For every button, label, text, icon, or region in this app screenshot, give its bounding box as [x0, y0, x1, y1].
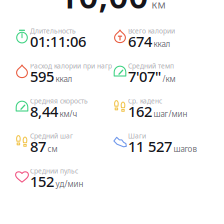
staticText: Средняя скорость	[30, 96, 88, 105]
staticText: км	[151, 0, 165, 11]
staticText: /км	[162, 73, 175, 84]
button[interactable]: Средний темп	[112, 55, 212, 90]
staticText: 595	[30, 66, 54, 86]
staticText: Длительность	[30, 26, 76, 35]
button[interactable]: Шаги	[112, 125, 212, 160]
staticText: шагов	[173, 143, 197, 154]
staticText: Всего калорий	[128, 26, 175, 35]
staticText: Расход калорий при нагрузке	[30, 61, 125, 70]
staticText: 87	[30, 136, 46, 156]
button[interactable]: Средний шаг	[14, 125, 114, 160]
staticText: 01:11:06	[30, 31, 86, 51]
button[interactable]: Средний пульс	[14, 160, 114, 195]
staticText: 162	[128, 101, 152, 121]
staticText: шаг/мин	[153, 108, 187, 119]
staticText: Средний пульс	[30, 166, 78, 175]
button[interactable]: Средняя скорость	[14, 90, 114, 125]
button[interactable]: Ср. каденс	[112, 90, 212, 125]
staticText: уд/мин	[55, 178, 83, 189]
staticText: ккал	[153, 38, 170, 49]
staticText: 8,44	[30, 101, 58, 121]
button[interactable]: Расход калорий при нагрузке	[14, 55, 114, 90]
button[interactable]: Всего калорий	[112, 20, 212, 55]
staticText: 674	[128, 31, 152, 51]
staticText: Средний темп	[128, 61, 174, 70]
staticText: Ср. каденс	[128, 96, 162, 105]
staticText: 7'07"	[128, 66, 161, 86]
staticText: см	[47, 143, 57, 154]
button[interactable]: Длительность	[14, 20, 114, 55]
staticText: 11 527	[128, 136, 172, 156]
staticText: км/ч	[59, 108, 77, 119]
staticText: ккал	[55, 73, 72, 84]
staticText: 10,00	[58, 0, 148, 18]
staticText: Шаги	[128, 131, 146, 140]
staticText: 152	[30, 171, 54, 191]
staticText: Средний шаг	[30, 131, 73, 140]
